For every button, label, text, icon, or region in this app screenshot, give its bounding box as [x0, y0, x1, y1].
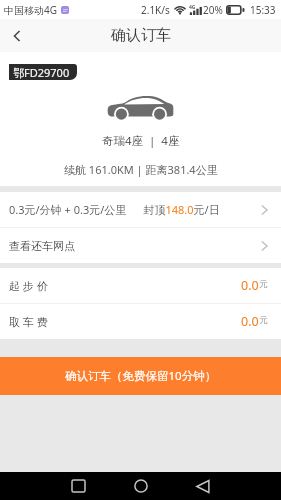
staticText: 中国移动4G	[4, 3, 57, 17]
staticText: 2.1K/s	[141, 3, 170, 17]
button[interactable]: Recent apps	[63, 472, 94, 500]
staticText: 4G	[189, 4, 196, 11]
staticText: 查看还车网点	[9, 239, 75, 253]
staticText: 0.3元/分钟 + 0.3元/公里 封顶148.0元/日	[9, 202, 220, 217]
staticText: 0.0	[241, 313, 259, 330]
staticText: 元	[259, 279, 268, 290]
button[interactable]: Home	[125, 472, 156, 500]
staticText: 确认订车（免费保留10分钟）	[65, 368, 217, 384]
staticText: 0.0	[241, 277, 259, 294]
staticText: 起 步 价	[9, 278, 48, 293]
staticText: 20%	[203, 3, 223, 17]
staticText: 元	[259, 315, 268, 326]
button[interactable]: 查看还车网点	[0, 228, 281, 263]
button[interactable]: 0.3元/分钟 + 0.3元/公里 封顶148.0元/日	[0, 192, 281, 227]
staticText: 鄂FD29700	[13, 65, 70, 80]
staticText: 取 车 费	[9, 314, 48, 329]
button[interactable]: Back	[0, 19, 33, 52]
button[interactable]: 确认订车（免费保留10分钟）	[0, 357, 281, 395]
staticText: 续航 161.0KM | 距离381.4公里	[64, 162, 218, 177]
staticText: 确认订车	[111, 26, 171, 45]
staticText: 15:33	[250, 3, 276, 17]
staticText: 奇瑞4座 | 4座	[102, 133, 180, 149]
button[interactable]: Back	[187, 472, 218, 500]
